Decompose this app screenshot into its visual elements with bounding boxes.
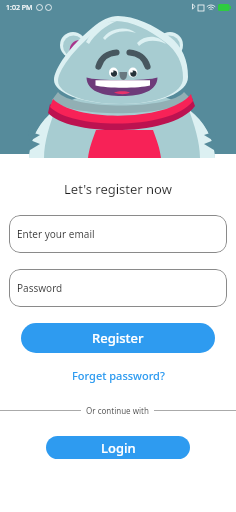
button[interactable]: Register (21, 323, 215, 353)
staticText: Enter your email (17, 227, 95, 241)
staticText: Login (101, 439, 136, 457)
button[interactable]: Password (9, 269, 227, 307)
button[interactable]: Enter your email (9, 215, 227, 253)
button[interactable]: Forget password? (70, 366, 167, 385)
staticText: Let's register now (0, 180, 236, 198)
staticText: Or continue with (86, 405, 149, 416)
staticText: 1:02 PM (6, 3, 33, 13)
staticText: Password (17, 281, 63, 295)
button[interactable]: Login (46, 436, 190, 459)
staticText: Register (92, 329, 144, 347)
